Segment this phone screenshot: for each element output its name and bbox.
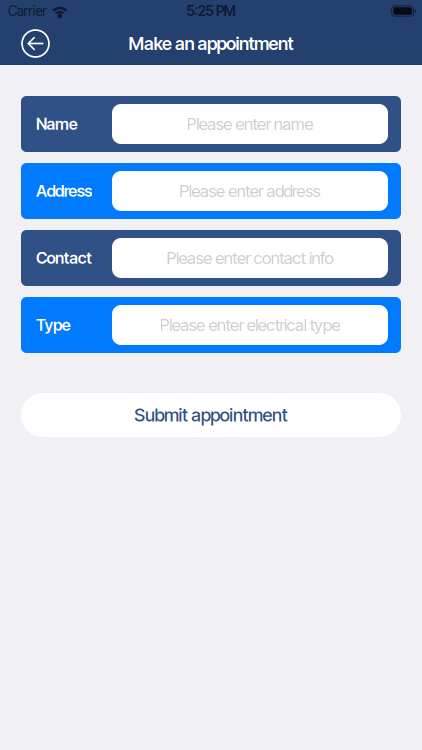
staticText: Please enter address (179, 181, 321, 201)
staticText: Please enter name (187, 114, 313, 134)
staticText: Please enter electrical type (160, 315, 340, 335)
staticText: Address (36, 181, 92, 201)
button[interactable]: Contact (21, 230, 401, 286)
staticText: Type (36, 315, 71, 335)
button[interactable]: Submit appointment (21, 393, 401, 437)
staticText: Contact (36, 248, 92, 268)
button[interactable]: Type (21, 297, 401, 353)
staticText: Name (36, 114, 78, 134)
button[interactable]: Back (0, 22, 59, 65)
staticText: Submit appointment (134, 404, 288, 426)
staticText: Make an appointment (128, 33, 293, 54)
button[interactable]: Name (21, 96, 401, 152)
staticText: Please enter contact info (166, 248, 334, 268)
button[interactable]: Address (21, 163, 401, 219)
staticText: Carrier (8, 3, 47, 19)
staticText: 5:25 PM (186, 2, 236, 19)
